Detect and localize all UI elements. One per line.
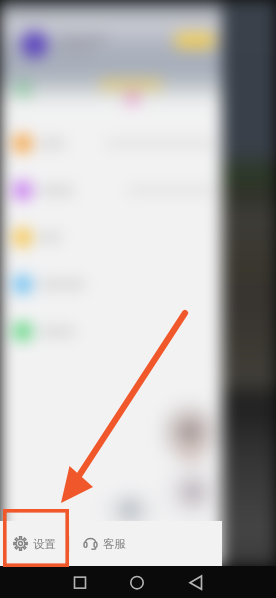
button[interactable] xyxy=(0,167,222,214)
button[interactable] xyxy=(0,261,222,308)
button[interactable] xyxy=(0,214,222,261)
staticText: 设置 xyxy=(33,537,56,551)
other: 客服 xyxy=(83,536,98,551)
button[interactable] xyxy=(0,308,222,355)
other: 设置 xyxy=(13,536,28,551)
button[interactable] xyxy=(0,120,222,167)
button[interactable]: 客服 xyxy=(70,521,139,566)
button[interactable] xyxy=(174,33,216,48)
staticText: 客服 xyxy=(103,537,126,551)
button[interactable]: 设置 xyxy=(0,521,69,566)
